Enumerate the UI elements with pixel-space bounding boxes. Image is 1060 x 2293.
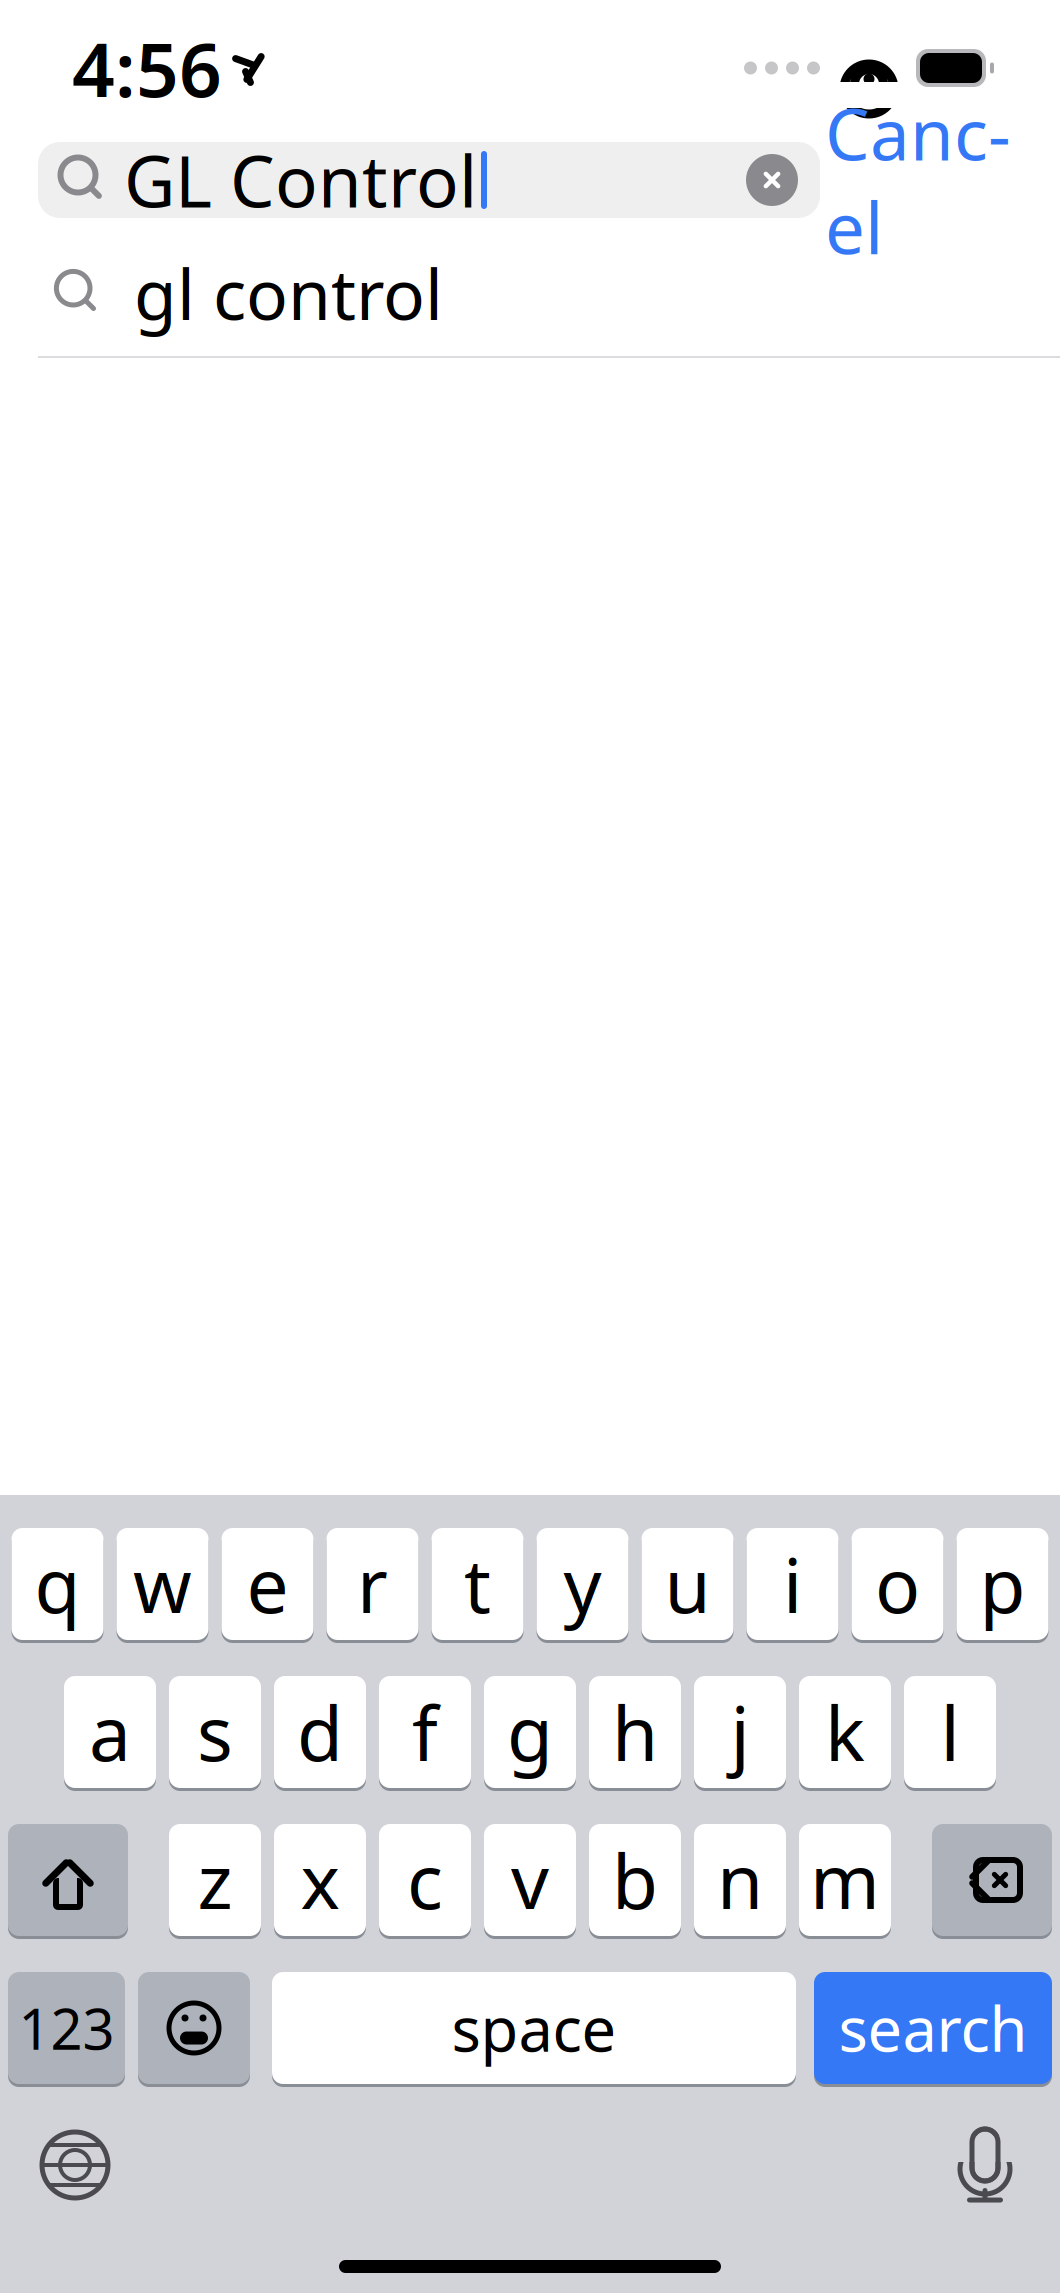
button[interactable]: Dictate bbox=[910, 2110, 1060, 2220]
button[interactable]: y bbox=[536, 1526, 628, 1642]
staticText: t bbox=[464, 1534, 491, 1634]
button[interactable]: Next keyboard bbox=[0, 2110, 150, 2220]
staticText: x bbox=[300, 1830, 339, 1930]
staticText: f bbox=[412, 1682, 438, 1782]
staticText: gl control bbox=[134, 247, 443, 339]
button[interactable]: x bbox=[274, 1822, 366, 1938]
staticText: k bbox=[825, 1682, 865, 1782]
staticText: j bbox=[730, 1682, 749, 1782]
button[interactable]: GL Control bbox=[38, 142, 820, 218]
staticText: o bbox=[875, 1534, 920, 1634]
button[interactable]: m bbox=[799, 1822, 891, 1938]
button[interactable]: e bbox=[221, 1526, 313, 1642]
button[interactable]: j bbox=[694, 1674, 786, 1790]
staticText: e bbox=[246, 1534, 288, 1634]
button[interactable]: n bbox=[694, 1822, 786, 1938]
staticText: v bbox=[511, 1830, 549, 1930]
button[interactable]: Emoji bbox=[138, 1970, 250, 2086]
button[interactable]: search bbox=[814, 1970, 1052, 2086]
staticText: b bbox=[612, 1830, 658, 1930]
staticText: h bbox=[612, 1682, 658, 1782]
button[interactable]: c bbox=[379, 1822, 471, 1938]
button[interactable]: l bbox=[904, 1674, 996, 1790]
staticText: a bbox=[89, 1682, 131, 1782]
staticText: search bbox=[838, 1987, 1027, 2069]
staticText: u bbox=[664, 1534, 710, 1634]
staticText: space bbox=[451, 1987, 616, 2069]
button[interactable]: g bbox=[484, 1674, 576, 1790]
staticText: r bbox=[357, 1534, 388, 1634]
button[interactable]: q bbox=[11, 1526, 103, 1642]
staticText: w bbox=[133, 1534, 192, 1634]
button[interactable]: u bbox=[641, 1526, 733, 1642]
button[interactable]: Cancel bbox=[820, 142, 1016, 218]
staticText: i bbox=[783, 1534, 802, 1634]
button[interactable]: r bbox=[326, 1526, 418, 1642]
staticText: 4:56 bbox=[72, 18, 222, 118]
staticText: z bbox=[197, 1830, 232, 1930]
button[interactable]: a bbox=[64, 1674, 156, 1790]
button[interactable]: t bbox=[431, 1526, 523, 1642]
staticText: m bbox=[810, 1830, 880, 1930]
button[interactable]: v bbox=[484, 1822, 576, 1938]
staticText: p bbox=[979, 1534, 1025, 1634]
staticText: y bbox=[563, 1534, 601, 1634]
button[interactable]: d bbox=[274, 1674, 366, 1790]
button[interactable]: k bbox=[799, 1674, 891, 1790]
button[interactable]: p bbox=[956, 1526, 1048, 1642]
button[interactable]: b bbox=[589, 1822, 681, 1938]
staticText: c bbox=[407, 1830, 443, 1930]
button[interactable]: space bbox=[272, 1970, 796, 2086]
staticText: l bbox=[940, 1682, 959, 1782]
staticText: d bbox=[297, 1682, 343, 1782]
button[interactable]: w bbox=[116, 1526, 208, 1642]
staticText: n bbox=[717, 1830, 763, 1930]
button[interactable]: Shift bbox=[8, 1822, 128, 1938]
staticText: Cancel bbox=[825, 86, 1011, 274]
button[interactable]: h bbox=[589, 1674, 681, 1790]
staticText: q bbox=[34, 1534, 80, 1634]
staticText: g bbox=[507, 1682, 553, 1782]
button[interactable]: s bbox=[169, 1674, 261, 1790]
button[interactable]: gl control bbox=[0, 230, 1060, 356]
staticText: 123 bbox=[18, 1991, 114, 2065]
button[interactable]: f bbox=[379, 1674, 471, 1790]
staticText: GL Control bbox=[124, 133, 477, 227]
button[interactable]: z bbox=[169, 1822, 261, 1938]
staticText: s bbox=[197, 1682, 233, 1782]
button[interactable]: i bbox=[746, 1526, 838, 1642]
button[interactable]: Delete bbox=[932, 1822, 1052, 1938]
button[interactable]: 123 bbox=[8, 1970, 125, 2086]
button[interactable]: o bbox=[851, 1526, 943, 1642]
